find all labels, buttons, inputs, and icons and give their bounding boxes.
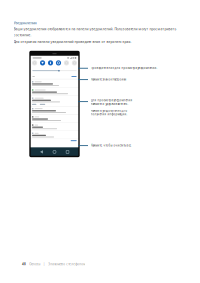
staticText: состояние.: [13, 33, 31, 37]
staticText: Проведите вниз для просмотра уведомлений…: [90, 66, 157, 70]
staticText: Ваши уведомления отображаются на панели …: [13, 27, 176, 31]
staticText: 48: [22, 262, 26, 266]
staticText: Нажмите значок Настройки: [90, 78, 126, 81]
staticText: Уведомления: [13, 20, 36, 25]
staticText: Нажмите, чтобы очистить все.: [90, 144, 131, 147]
staticText: Основы | Знакомство с телефоном: [29, 262, 85, 266]
staticText: Нажмите уведомление для получения информ…: [90, 109, 127, 116]
staticText: Для открытия панели уведомлений проведит…: [13, 39, 131, 44]
staticText: Для просмотра уведомления нажмите и удер…: [90, 98, 132, 106]
